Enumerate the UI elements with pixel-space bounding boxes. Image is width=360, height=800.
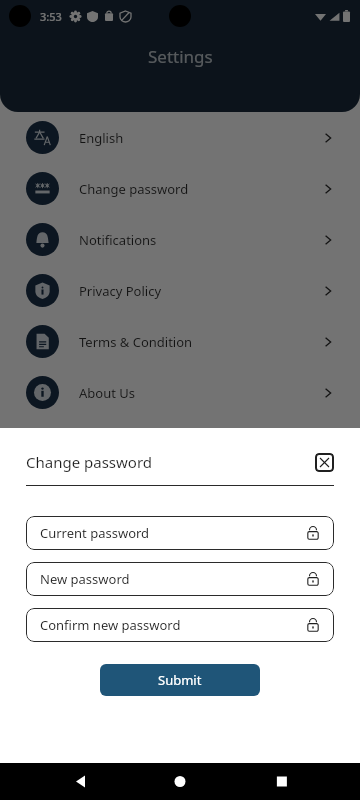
staticText: Notifications — [79, 231, 157, 249]
staticText: Change password — [26, 452, 153, 472]
staticText: Confirm new password — [40, 616, 181, 634]
staticText: Current password — [40, 524, 150, 542]
button[interactable]: About Us — [0, 367, 360, 418]
staticText: Terms & Condition — [79, 333, 193, 351]
staticText: Settings — [148, 45, 213, 68]
staticText: Change password — [79, 180, 189, 198]
staticText: About Us — [79, 384, 136, 402]
button[interactable]: English — [0, 112, 360, 163]
button[interactable]: Terms & Condition — [0, 316, 360, 367]
button[interactable]: Change password — [0, 163, 360, 214]
staticText: English — [79, 129, 124, 147]
staticText: New password — [40, 570, 130, 588]
button[interactable]: Privacy Policy — [0, 265, 360, 316]
button[interactable]: Submit — [100, 664, 260, 696]
staticText: Privacy Policy — [79, 282, 162, 300]
staticText: Submit — [158, 671, 202, 689]
button[interactable]: Current password — [26, 516, 334, 550]
button[interactable]: Close — [315, 453, 334, 472]
button[interactable]: Notifications — [0, 214, 360, 265]
button[interactable]: Confirm new password — [26, 608, 334, 642]
staticText: 3:53 — [40, 9, 62, 24]
button[interactable]: New password — [26, 562, 334, 596]
